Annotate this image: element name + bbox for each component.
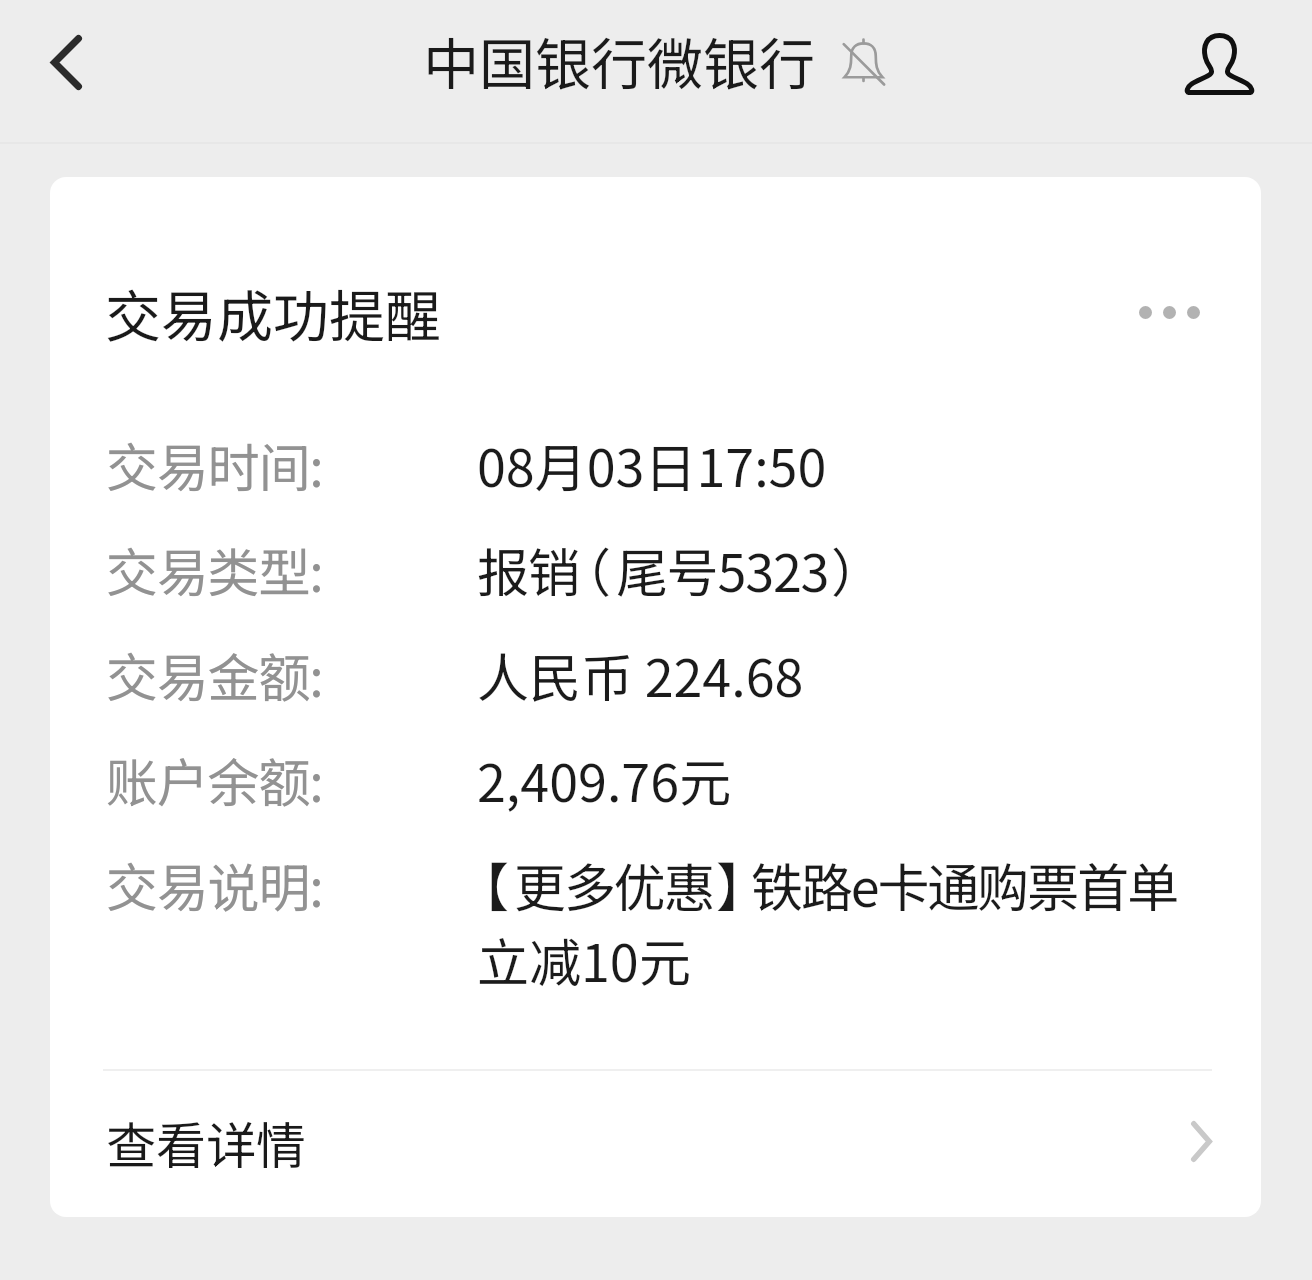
staticText: 】 xyxy=(716,847,769,922)
staticText: 交易金额: xyxy=(106,637,477,712)
staticText: 交易说明: xyxy=(106,847,477,922)
staticText: 2,409.76元 xyxy=(477,742,732,817)
staticText: 铁路e卡通购票首单 xyxy=(751,847,1177,922)
staticText: 更多优惠 xyxy=(514,847,714,922)
staticText: 查看详情 xyxy=(106,1106,306,1178)
staticText: 交易时间: xyxy=(106,427,477,502)
staticText: 尾号5323 xyxy=(616,532,829,607)
button[interactable]: Profile xyxy=(1173,20,1265,106)
button[interactable]: More options xyxy=(1131,292,1208,333)
staticText: 立减10元 xyxy=(477,922,691,997)
staticText: 交易成功提醒 xyxy=(105,272,441,353)
staticText: ） xyxy=(831,532,884,607)
staticText: 08月03日17:50 xyxy=(477,427,827,502)
button[interactable]: Back xyxy=(22,11,110,113)
staticText: 【 xyxy=(457,847,510,922)
staticText: 账户余额: xyxy=(106,742,477,817)
staticText: 人民币 224.68 xyxy=(477,637,804,712)
staticText: 中国银行微银行 xyxy=(423,20,815,101)
staticText: 报销 xyxy=(477,532,579,607)
staticText: （ xyxy=(559,532,612,607)
button[interactable]: 查看详情 xyxy=(50,1071,1261,1217)
staticText: 交易类型: xyxy=(106,532,477,607)
